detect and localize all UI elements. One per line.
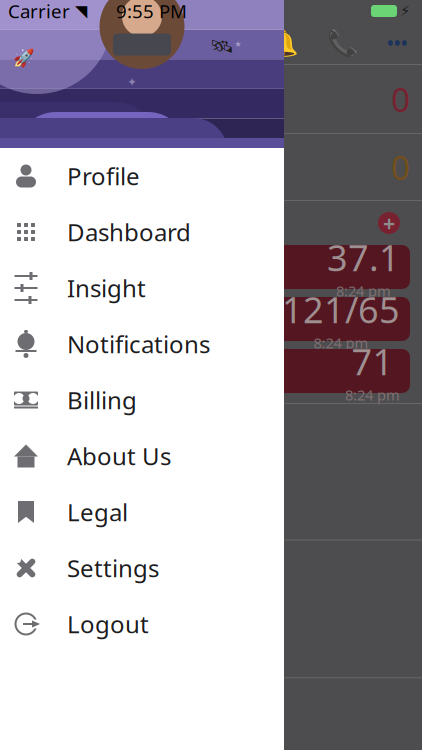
staticText: ⚡︎	[400, 3, 410, 19]
button[interactable]: Legal	[0, 484, 284, 540]
button[interactable]: Billing	[0, 372, 284, 428]
staticText: 📞	[327, 28, 359, 57]
staticText: 71	[351, 337, 393, 385]
staticText: Settings	[67, 552, 159, 584]
staticText: Food	[61, 552, 120, 586]
staticText: Insight	[67, 272, 146, 304]
staticText: 37.1	[327, 233, 400, 281]
staticText: +	[383, 209, 395, 237]
staticText: 9:55 PM	[116, 0, 187, 23]
button[interactable]: Dashboard	[0, 204, 284, 260]
staticText: 8:24 pm	[345, 385, 400, 405]
staticText: 0	[391, 77, 410, 121]
staticText: ♥	[16, 414, 45, 450]
staticText: 🔔	[267, 28, 299, 57]
staticText: 0	[391, 145, 410, 189]
staticText: ✦	[127, 75, 137, 89]
staticText: ★	[234, 39, 241, 49]
staticText: Legal	[67, 496, 128, 528]
staticText: Notifications	[67, 328, 210, 360]
button[interactable]: Profile	[0, 148, 284, 204]
staticText: ★	[176, 27, 184, 37]
staticText: p	[12, 84, 26, 114]
staticText: ◥	[75, 2, 87, 20]
button[interactable]: Insight	[0, 260, 284, 316]
staticText: 🍴	[16, 552, 53, 586]
staticText: Profile	[67, 160, 140, 192]
staticText: 121/65	[282, 285, 400, 333]
staticText: Carrier	[8, 0, 70, 23]
button[interactable]: About Us	[0, 428, 284, 484]
staticText: eds	[12, 152, 50, 182]
staticText: •••	[387, 31, 408, 54]
staticText: Dashboard	[67, 216, 191, 248]
staticText: Logout	[67, 608, 149, 640]
button[interactable]: Settings	[0, 540, 284, 596]
staticText: About Us	[67, 440, 171, 472]
staticText: 8:24 pm	[313, 333, 368, 353]
staticText: 🛰	[210, 35, 234, 57]
staticText: 8:24 pm	[336, 281, 391, 301]
staticText: 🚀	[13, 48, 35, 68]
staticText: Billing	[67, 384, 137, 416]
staticText: Heart Rate	[53, 415, 179, 449]
button[interactable]: Logout	[0, 596, 284, 652]
button[interactable]: Notifications	[0, 316, 284, 372]
